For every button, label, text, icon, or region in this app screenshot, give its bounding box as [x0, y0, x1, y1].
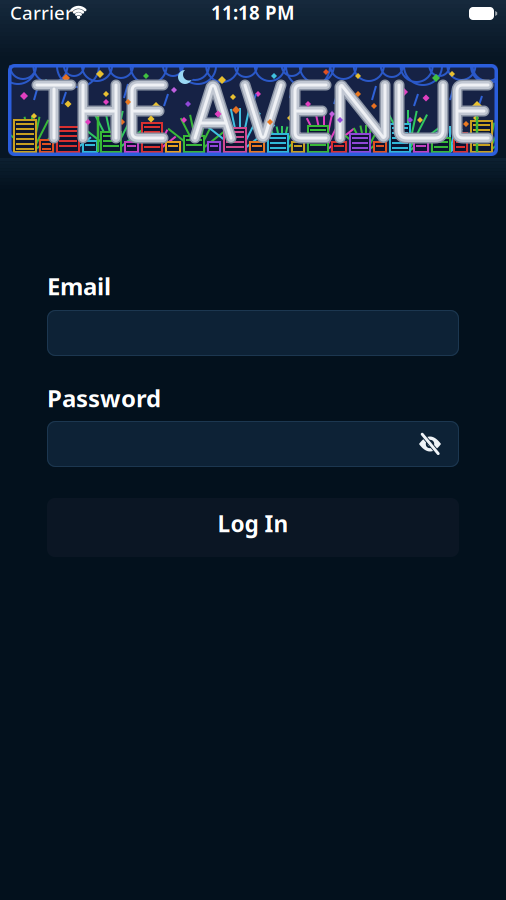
staticText: Password [47, 382, 161, 414]
button[interactable] [47, 310, 459, 356]
staticText: Carrier [10, 0, 73, 25]
button[interactable]: Log In [47, 498, 459, 557]
button[interactable] [47, 421, 459, 467]
staticText: Log In [217, 508, 288, 538]
staticText: Email [47, 270, 111, 302]
staticText: 11:18 PM [211, 0, 295, 25]
